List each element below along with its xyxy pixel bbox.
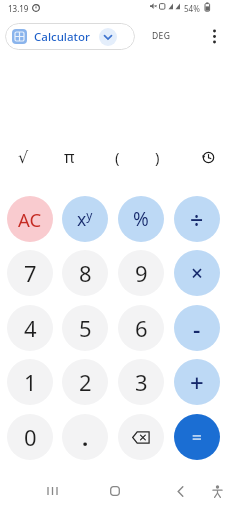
- staticText: 54%: [184, 3, 200, 14]
- staticText: 4: [24, 313, 37, 343]
- staticText: ): [155, 147, 160, 167]
- staticText: π: [64, 146, 75, 168]
- staticText: =: [192, 426, 202, 449]
- button[interactable]: 3: [118, 359, 164, 405]
- button[interactable]: -: [174, 305, 220, 351]
- button[interactable]: 8: [62, 250, 108, 296]
- button[interactable]: 1: [7, 359, 53, 405]
- staticText: 6: [135, 313, 148, 343]
- button[interactable]: 0: [7, 414, 53, 460]
- staticText: +: [190, 366, 204, 399]
- button[interactable]: [118, 414, 164, 460]
- staticText: 13.19: [8, 3, 29, 14]
- staticText: 9: [135, 258, 148, 288]
- button[interactable]: 4: [7, 305, 53, 351]
- button[interactable]: [103, 479, 127, 503]
- staticText: Calculator: [34, 29, 90, 45]
- button[interactable]: 2: [62, 359, 108, 405]
- staticText: ×: [191, 259, 204, 288]
- button[interactable]: [168, 479, 192, 503]
- button[interactable]: 6: [118, 305, 164, 351]
- staticText: AC: [18, 207, 42, 232]
- staticText: -: [193, 313, 201, 344]
- staticText: 8: [79, 258, 92, 288]
- button[interactable]: (: [98, 143, 136, 171]
- button[interactable]: =: [174, 414, 220, 460]
- staticText: 2: [79, 367, 92, 397]
- button[interactable]: [205, 479, 229, 503]
- button[interactable]: ×: [174, 250, 220, 296]
- staticText: 0: [24, 422, 37, 452]
- button[interactable]: DEG: [146, 26, 176, 46]
- button[interactable]: 9: [118, 250, 164, 296]
- button[interactable]: Calculator: [5, 23, 135, 50]
- staticText: xy: [77, 207, 93, 231]
- staticText: 3: [135, 367, 148, 397]
- staticText: 1: [24, 367, 37, 397]
- button[interactable]: ): [138, 143, 176, 171]
- button[interactable]: √: [4, 143, 42, 171]
- button[interactable]: ÷: [174, 196, 220, 242]
- staticText: √: [18, 148, 29, 167]
- button[interactable]: [40, 479, 64, 503]
- button[interactable]: [206, 26, 222, 46]
- button[interactable]: %: [118, 196, 164, 242]
- button[interactable]: AC: [7, 196, 53, 242]
- staticText: (: [115, 147, 120, 167]
- staticText: ÷: [190, 204, 204, 235]
- staticText: %: [133, 206, 149, 232]
- button[interactable]: xy: [62, 196, 108, 242]
- button[interactable]: +: [174, 359, 220, 405]
- staticText: DEG: [152, 30, 171, 42]
- button[interactable]: 7: [7, 250, 53, 296]
- button[interactable]: .: [62, 414, 108, 460]
- button[interactable]: π: [50, 143, 88, 171]
- staticText: 7: [24, 258, 37, 288]
- staticText: .: [82, 422, 89, 452]
- button[interactable]: [189, 143, 227, 171]
- staticText: 5: [79, 313, 92, 343]
- button[interactable]: 5: [62, 305, 108, 351]
